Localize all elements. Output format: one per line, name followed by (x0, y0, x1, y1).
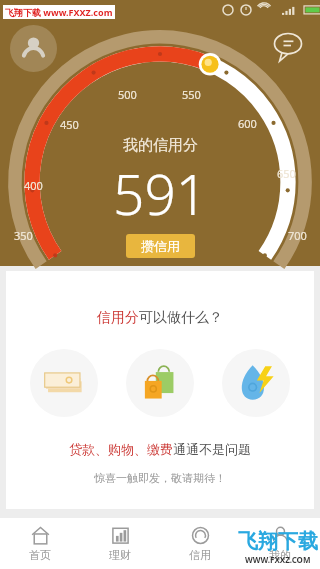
button[interactable]: 攒信用 (126, 234, 195, 258)
staticText: 首页 (29, 548, 51, 562)
staticText: 飞翔下载 www.FXXZ.com (5, 6, 113, 18)
button[interactable]: Loans (30, 349, 98, 417)
staticText: 我的信用分 (123, 136, 198, 155)
button[interactable]: Utilities (222, 349, 290, 417)
staticText: 攒信用 (141, 238, 180, 254)
staticText: 600 (238, 116, 257, 131)
button[interactable]: 首页 (0, 518, 80, 569)
button[interactable]: 我的 (240, 518, 320, 569)
staticText: 591 (113, 156, 208, 231)
staticText: 400 (24, 178, 43, 193)
staticText: 700 (288, 228, 307, 243)
staticText: 理财 (109, 548, 131, 562)
staticText: 信用分可以做什么？ (97, 309, 223, 327)
staticText: 350 (14, 228, 33, 243)
button[interactable]: Messages (269, 28, 307, 66)
staticText: WWW.FXXZ.COM (245, 554, 311, 565)
button[interactable]: 信用 (160, 518, 240, 569)
staticText: 450 (60, 117, 79, 132)
staticText: 550 (182, 87, 201, 102)
button[interactable]: 理财 (80, 518, 160, 569)
staticText: 飞翔下载 (238, 529, 318, 554)
staticText: 650 (277, 166, 296, 181)
staticText: 贷款、购物、缴费通通不是问题 (69, 441, 251, 457)
staticText: 信用 (189, 548, 211, 562)
staticText: 惊喜一触即发，敬请期待！ (94, 471, 226, 485)
button[interactable]: Profile (10, 25, 57, 72)
staticText: 500 (118, 87, 137, 102)
staticText: 我的 (269, 548, 291, 562)
button[interactable]: Shopping (126, 349, 194, 417)
